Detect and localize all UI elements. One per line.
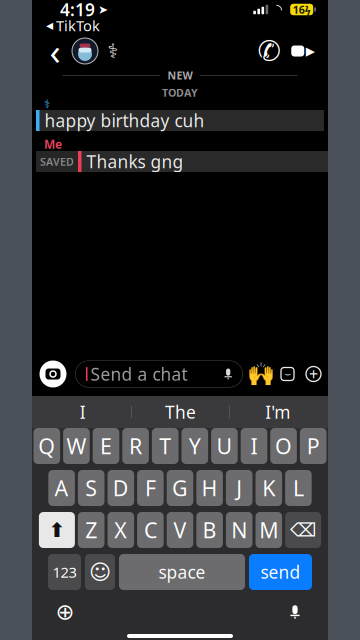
button[interactable]: Q	[33, 428, 60, 464]
button[interactable]: L	[285, 470, 312, 506]
staticText: I	[250, 432, 257, 460]
button[interactable]: V	[167, 512, 193, 548]
staticText: Q	[38, 432, 55, 460]
staticText: NEW	[167, 68, 192, 82]
staticText: ◀	[46, 20, 53, 31]
staticText: Thanks gng	[86, 150, 183, 173]
staticText: ⌫	[290, 519, 316, 541]
button[interactable]: M	[255, 512, 282, 548]
staticText: Y	[189, 432, 201, 460]
button[interactable]: E	[93, 428, 119, 464]
button[interactable]: X	[107, 512, 134, 548]
button[interactable]: Emoji	[250, 361, 271, 387]
button[interactable]: Y	[181, 428, 208, 464]
button[interactable]: The	[132, 396, 229, 428]
button[interactable]: H	[196, 470, 223, 506]
staticText: TikTok	[56, 16, 100, 35]
staticText: ◝	[276, 1, 282, 18]
staticText: V	[173, 516, 186, 544]
button[interactable]: I'm	[230, 396, 326, 428]
staticText: L	[293, 474, 304, 502]
button[interactable]: Astrology	[102, 32, 124, 70]
button[interactable]: Stickers	[278, 361, 297, 387]
staticText: ➤	[98, 3, 108, 16]
button[interactable]: I	[34, 396, 131, 428]
staticText: A	[55, 474, 69, 502]
staticText: Me	[44, 136, 62, 152]
staticText: X	[114, 516, 127, 544]
button[interactable]: 123	[48, 554, 81, 590]
staticText: The	[165, 400, 196, 423]
staticText: H	[202, 474, 218, 502]
staticText: N	[231, 516, 247, 544]
staticText: happy birthday cuh	[44, 109, 204, 132]
staticText: K	[262, 474, 275, 502]
button[interactable]: Emoji keyboard	[85, 554, 115, 590]
button[interactable]: send	[249, 554, 312, 590]
staticText: T	[159, 432, 171, 460]
staticText: 16	[293, 2, 305, 17]
button[interactable]: Voice call	[252, 32, 286, 70]
button[interactable]: N	[226, 512, 252, 548]
staticText: TODAY	[162, 85, 198, 100]
staticText: ‹	[49, 27, 60, 75]
button[interactable]: O	[270, 428, 297, 464]
staticText: Send a chat	[90, 362, 187, 385]
staticText: ⚕	[44, 97, 50, 111]
button[interactable]: D	[107, 470, 134, 506]
staticText: O	[275, 432, 292, 460]
staticText: E	[100, 432, 112, 460]
button[interactable]: Switch keyboard	[50, 598, 80, 626]
staticText: ⚕	[107, 40, 118, 62]
staticText: I	[80, 400, 86, 423]
staticText: ▶	[306, 44, 315, 58]
button[interactable]: Shift	[39, 512, 75, 548]
staticText: J	[236, 474, 242, 502]
button[interactable]: space	[119, 554, 245, 590]
staticText: F	[145, 474, 156, 502]
button[interactable]: J	[226, 470, 252, 506]
staticText: ϟ	[305, 2, 311, 17]
button[interactable]: More options	[304, 361, 323, 387]
staticText: SAVED	[40, 154, 74, 169]
button[interactable]: W	[63, 428, 90, 464]
staticText: ⬆	[48, 519, 65, 541]
button[interactable]: Z	[78, 512, 104, 548]
button[interactable]: Dictate	[280, 598, 310, 626]
staticText: space	[158, 560, 205, 583]
button[interactable]: R	[122, 428, 149, 464]
button[interactable]: S	[78, 470, 104, 506]
button[interactable]: Video call	[286, 32, 320, 70]
button[interactable]: Back	[42, 32, 68, 70]
staticText: 4:19	[60, 0, 95, 21]
button[interactable]: T	[152, 428, 178, 464]
staticText: G	[172, 474, 188, 502]
staticText: 123	[52, 562, 76, 582]
staticText: ⌣	[284, 369, 291, 379]
button[interactable]: Profile	[68, 32, 102, 70]
button[interactable]: Delete	[285, 512, 321, 548]
staticText: R	[129, 432, 142, 460]
staticText: 🙌	[246, 361, 274, 387]
button[interactable]: I	[241, 428, 267, 464]
button[interactable]: G	[167, 470, 193, 506]
staticText: ☺	[89, 560, 111, 584]
staticText: C	[144, 516, 157, 544]
button[interactable]: U	[211, 428, 238, 464]
button[interactable]: C	[137, 512, 164, 548]
staticText: U	[216, 432, 232, 460]
button[interactable]: Send a chat	[75, 360, 243, 387]
staticText: W	[66, 432, 86, 460]
staticText: S	[85, 474, 97, 502]
staticText: D	[113, 474, 129, 502]
staticText: ⊕	[55, 599, 74, 625]
button[interactable]: K	[255, 470, 282, 506]
button[interactable]: B	[196, 512, 223, 548]
staticText: +	[309, 363, 318, 385]
staticText: send	[260, 560, 300, 583]
staticText: M	[259, 516, 278, 544]
button[interactable]: F	[137, 470, 164, 506]
button[interactable]: P	[300, 428, 326, 464]
button[interactable]: Camera	[38, 359, 68, 389]
button[interactable]: A	[48, 470, 75, 506]
